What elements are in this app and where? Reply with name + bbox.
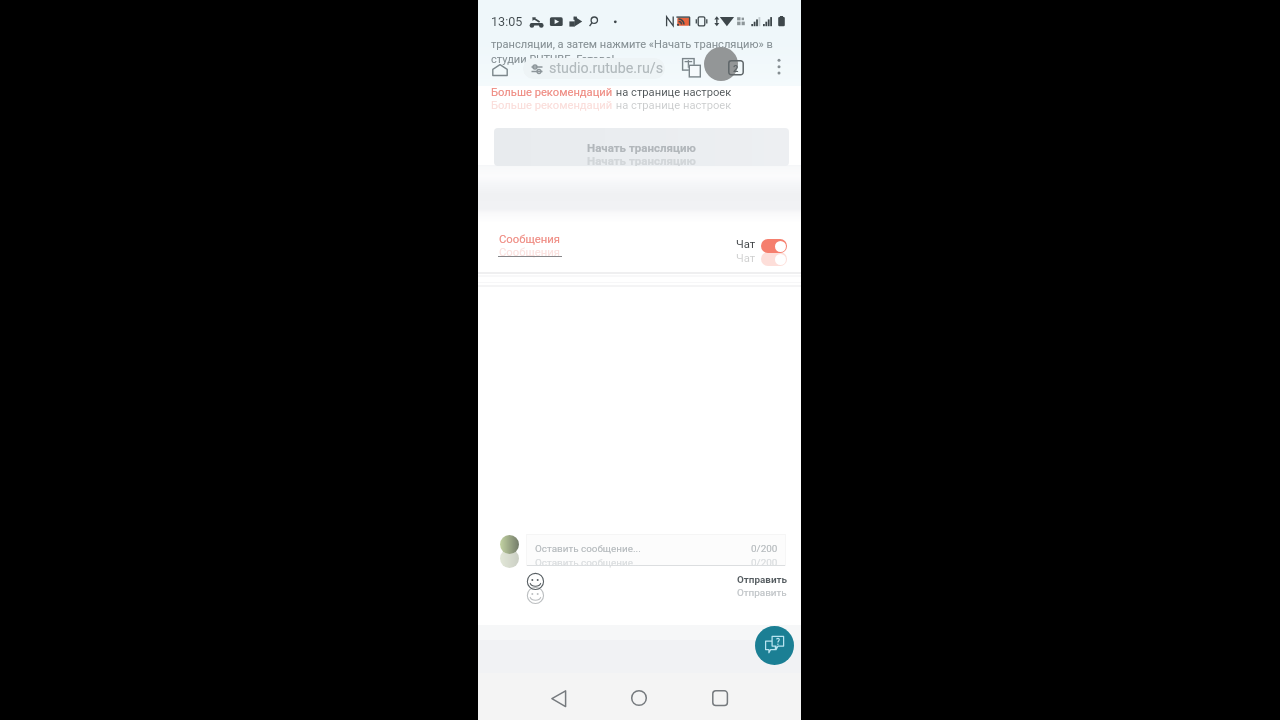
button[interactable]: Insert emoji: [524, 569, 548, 593]
button[interactable]: Switch tabs: [722, 54, 750, 82]
staticText: 13:05: [491, 14, 523, 29]
staticText: студии RUTUBE. Готово!: [491, 53, 615, 66]
staticText: Больше рекомендаций: [491, 99, 613, 112]
staticText: Начать трансляцию: [587, 141, 696, 154]
staticText: на странице настроек: [613, 86, 732, 99]
staticText: на странице настроек: [613, 99, 732, 112]
staticText: 0/200: [751, 557, 778, 569]
staticText: трансляции, а затем нажмите «Начать тран…: [491, 38, 773, 51]
button[interactable]: Отправить: [728, 570, 788, 600]
staticText: Оставить сообщение...: [535, 557, 641, 569]
button[interactable]: Сообщения: [495, 228, 565, 260]
button[interactable]: Your avatar: [500, 535, 519, 554]
button[interactable]: Начать трансляцию: [494, 128, 789, 166]
staticText: Отправить: [737, 574, 788, 586]
button[interactable]: Home: [486, 58, 514, 82]
staticText: 2: [733, 63, 739, 74]
staticText: Сообщения: [499, 233, 561, 246]
button[interactable]: Back: [538, 678, 578, 718]
staticText: Оставить сообщение...: [535, 543, 641, 555]
button[interactable]: Home: [619, 678, 659, 718]
staticText: studio.rutube.ru/s: [549, 60, 664, 77]
button[interactable]: Recent apps: [700, 678, 740, 718]
button[interactable]: Support chat: [755, 626, 794, 665]
staticText: Отправить: [737, 587, 787, 599]
button[interactable]: Translate page: [677, 53, 706, 82]
staticText: Чат: [736, 252, 756, 265]
staticText: Чат: [736, 238, 756, 251]
staticText: Больше рекомендаций: [491, 86, 613, 99]
button[interactable]: Чат: [730, 232, 790, 268]
button[interactable]: studio.rutube.ru/s: [523, 58, 665, 79]
staticText: 0/200: [751, 543, 778, 555]
staticText: Сообщения: [499, 246, 561, 259]
staticText: Начать трансляцию: [587, 154, 696, 166]
button[interactable]: Оставить сообщение: [526, 534, 786, 566]
button[interactable]: More options: [768, 55, 790, 77]
button[interactable]: Account: [704, 47, 738, 81]
